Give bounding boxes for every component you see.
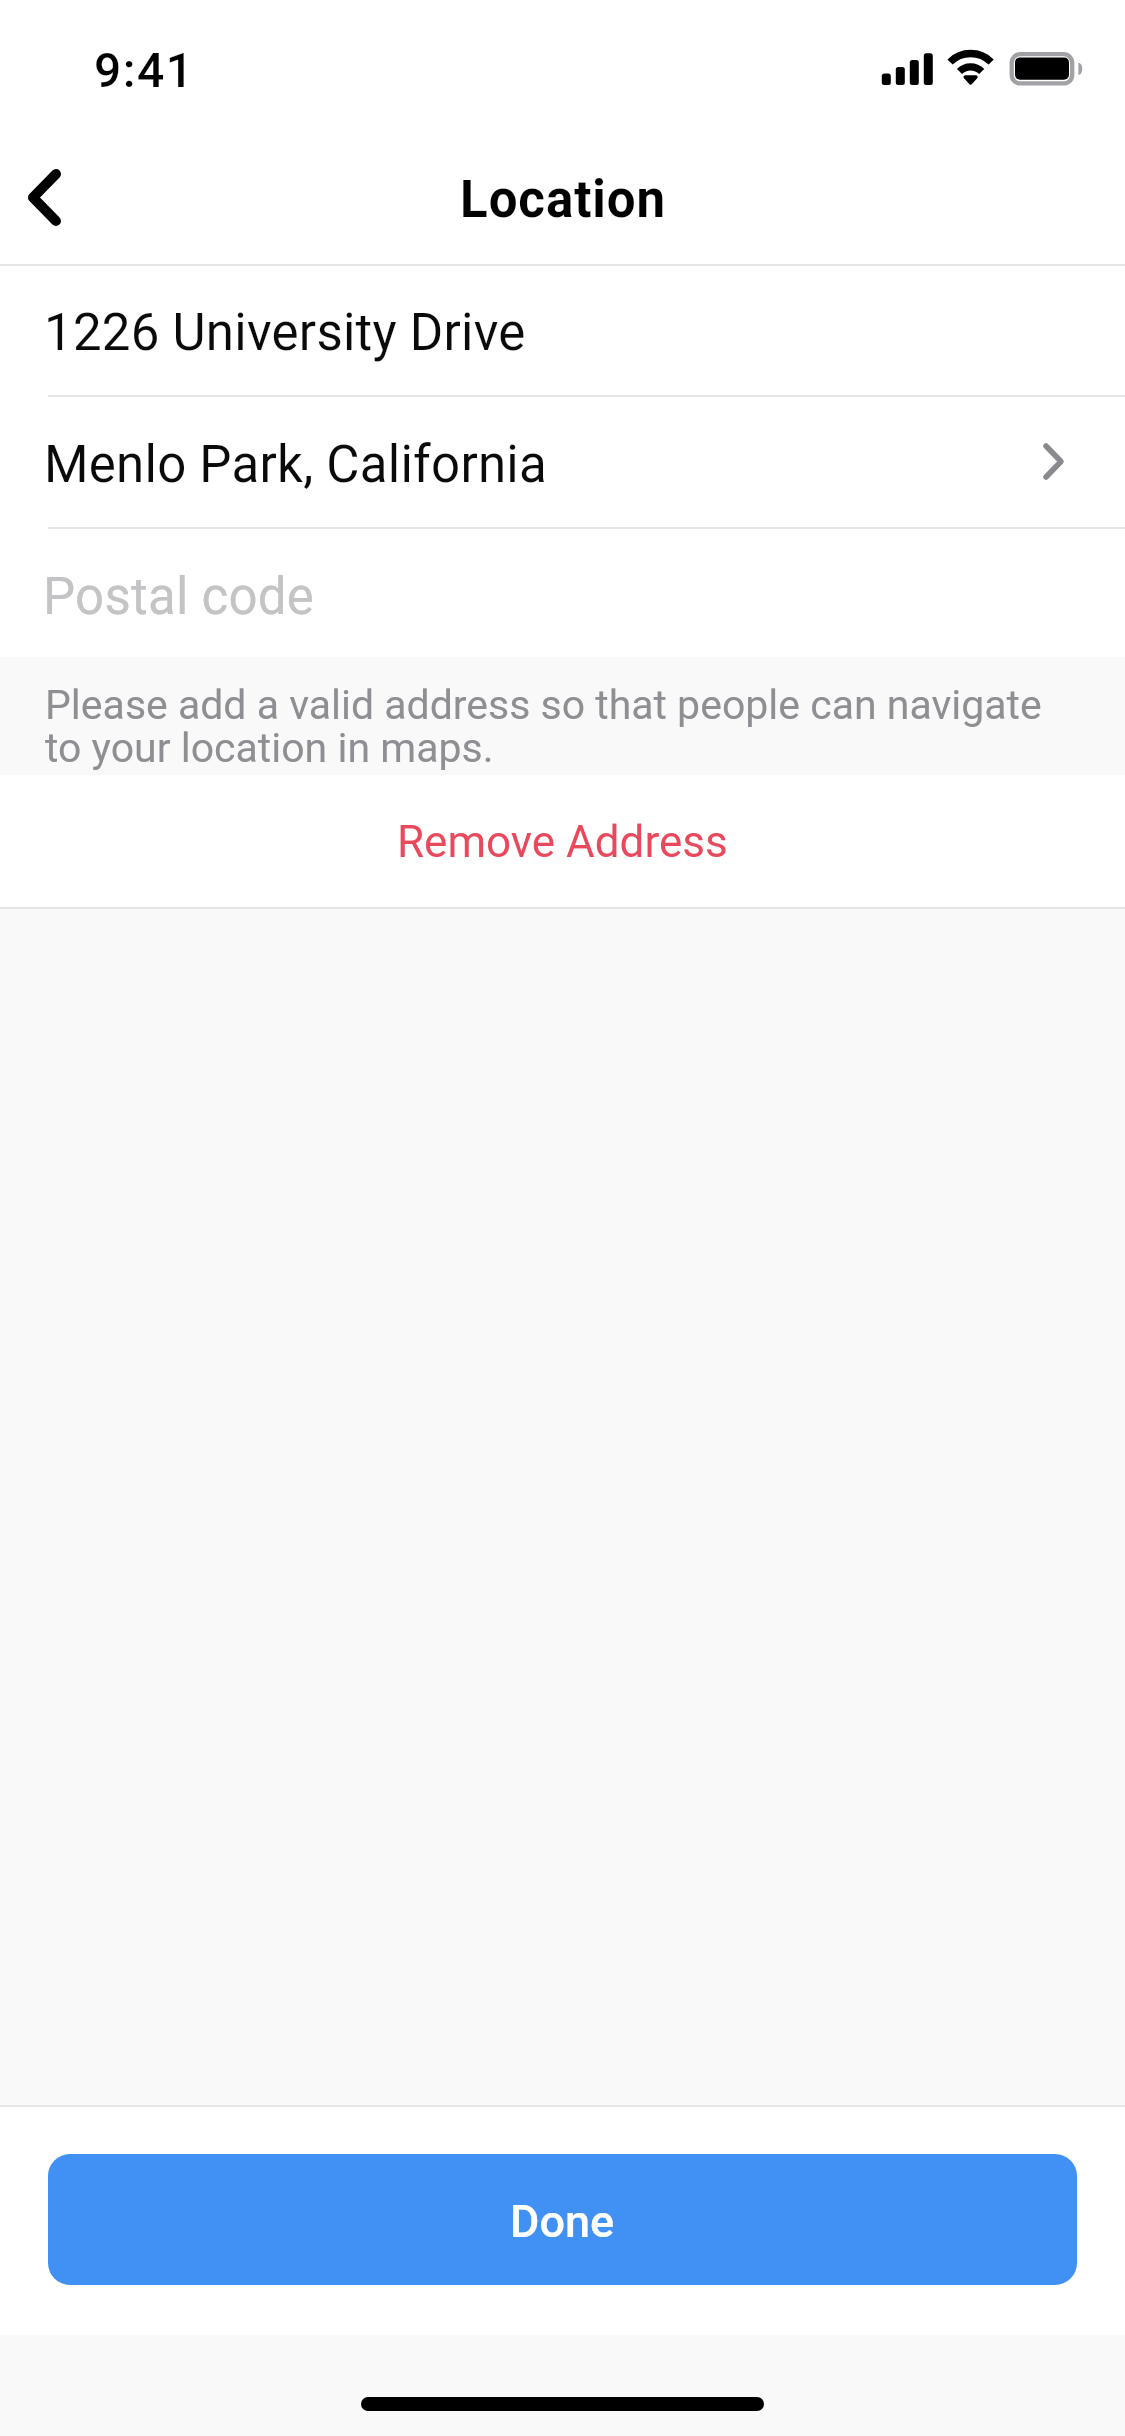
button[interactable]: Back [0,137,120,257]
button[interactable]: Done [48,2154,1077,2285]
staticText: Menlo Park, California [44,435,547,495]
staticText: Please add a valid address so that peopl… [45,681,1055,772]
button[interactable]: Menlo Park, California [0,397,1125,527]
staticText: 9:41 [94,42,195,98]
button[interactable]: 1226 University Drive [0,266,1125,395]
staticText: Location [460,170,666,230]
staticText: Remove Address [397,816,728,868]
staticText: Postal code [43,567,315,627]
staticText: 1226 University Drive [44,303,526,363]
staticText: Done [510,2195,615,2248]
button[interactable]: Postal code [0,529,1125,657]
button[interactable]: Remove Address [0,775,1125,907]
